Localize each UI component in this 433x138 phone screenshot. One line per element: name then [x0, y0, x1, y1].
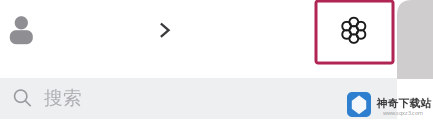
button[interactable]: 搜索	[0, 77, 433, 119]
button[interactable]: Show more	[148, 8, 182, 52]
button[interactable]: Account	[0, 8, 43, 52]
staticText: 神奇下载站	[376, 97, 431, 110]
staticText: 搜索	[44, 86, 82, 109]
staticText: www.sqxz3.com	[383, 109, 423, 117]
button[interactable]: Discover	[332, 8, 376, 52]
